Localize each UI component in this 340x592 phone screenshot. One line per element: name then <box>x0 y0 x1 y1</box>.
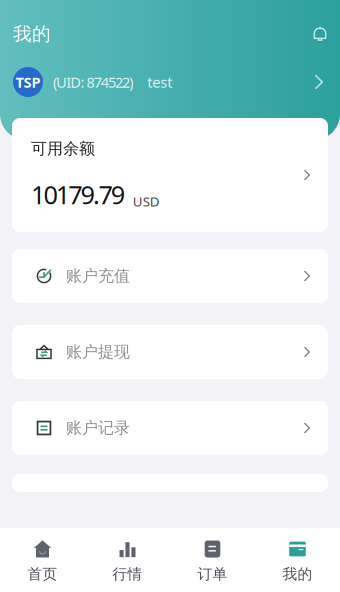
staticText: 首页 <box>27 565 57 583</box>
staticText: test <box>147 72 172 92</box>
staticText: 账户记录 <box>66 418 130 438</box>
staticText: 我的 <box>13 22 51 45</box>
button[interactable]: 行情 <box>85 540 170 583</box>
button[interactable]: 账户记录 <box>12 401 328 455</box>
staticText: 账户提现 <box>66 342 130 362</box>
button[interactable]: 我的 <box>255 540 340 583</box>
staticText: 行情 <box>112 565 142 583</box>
staticText: 账户充值 <box>66 266 130 286</box>
staticText: 订单 <box>197 565 227 583</box>
staticText: 可用余额 <box>31 139 95 159</box>
button[interactable]: Notifications <box>307 21 333 47</box>
button[interactable]: 可用余额 <box>12 118 328 232</box>
button[interactable]: 订单 <box>170 540 255 583</box>
staticText: 我的 <box>282 565 312 583</box>
button[interactable]: 账户提现 <box>12 325 328 379</box>
button[interactable]: 账户充值 <box>12 249 328 303</box>
staticText: (UID: 874522) <box>53 72 133 92</box>
staticText: TSP <box>15 72 40 92</box>
button[interactable]: TSP <box>0 64 340 100</box>
staticText: 10179.79 <box>31 177 125 211</box>
staticText: USD <box>133 192 160 210</box>
button[interactable]: 首页 <box>0 540 85 583</box>
